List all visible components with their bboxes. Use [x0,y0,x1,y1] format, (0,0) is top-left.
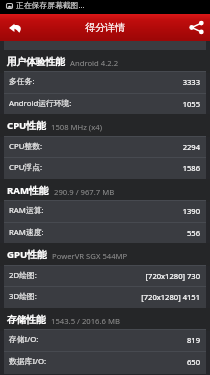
staticText: 650 [51,357,200,367]
button[interactable]: Back [0,14,30,41]
staticText: 3D绘图: [9,291,37,302]
staticText: 存储性能 [7,314,46,326]
staticText: RAM性能 [7,184,49,197]
staticText: GPU性能 [7,248,47,261]
staticText: 正在保存屏幕截图... [16,0,85,11]
staticText: Android 4.2.2 [70,58,119,68]
staticText: 得分详情 [85,21,125,34]
staticText: Android运行环境: [9,98,72,109]
staticText: 2294 [47,142,200,152]
staticText: RAM速度: [9,227,44,238]
staticText: 1390 [48,206,200,216]
button[interactable]: CPU整数: [4,136,206,159]
button[interactable]: RAM运算: [4,200,206,223]
staticText: 819 [43,335,200,345]
button[interactable]: 存储I/O: [4,329,206,352]
staticText: 3333 [39,77,200,87]
button[interactable]: 存储性能 [0,308,210,331]
staticText: RAM运算: [9,205,44,216]
button[interactable]: 用户体验性能 [0,50,210,73]
staticText: 1543.5 / 2016.6 MB [51,316,120,326]
button[interactable]: 数据库I/O: [4,351,206,374]
staticText: [720x1280] 730 [41,271,200,281]
staticText: 存储I/O: [9,334,39,345]
staticText: 数据库I/O: [9,356,47,367]
staticText: 2D绘图: [9,270,37,281]
staticText: PowerVR SGX 544MP [52,251,128,261]
staticText: 1586 [47,163,200,173]
staticText: CPU性能 [7,119,46,132]
staticText: 290.9 / 967.7 MB [54,187,115,197]
staticText: 多任务: [9,76,35,87]
button[interactable]: Share [182,14,210,41]
button[interactable]: CPU浮点: [4,157,206,180]
button[interactable]: CPU性能 [0,114,210,137]
staticText: 1508 MHz (x4) [51,122,102,132]
button[interactable]: GPU性能 [0,243,210,266]
staticText: CPU浮点: [9,162,43,173]
button[interactable]: 2D绘图: [4,265,206,288]
staticText: 556 [48,228,200,238]
button[interactable]: 3D绘图: [4,286,206,309]
button[interactable]: RAM性能 [0,179,210,202]
button[interactable]: Android运行环境: [4,93,206,116]
staticText: 用户体验性能 [7,56,65,68]
staticText: [720x1280] 4151 [41,292,200,302]
button[interactable]: RAM速度: [4,222,206,245]
staticText: 1055 [76,99,200,109]
button[interactable]: 多任务: [4,71,206,94]
staticText: CPU整数: [9,141,43,152]
